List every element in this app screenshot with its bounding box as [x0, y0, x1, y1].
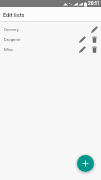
button[interactable]: Drogerie	[0, 34, 101, 44]
staticText: 20:11	[88, 1, 100, 7]
button[interactable]: Misc	[0, 44, 101, 54]
staticText: Edit lists	[3, 12, 25, 19]
button[interactable]: Edit Drogerie	[76, 34, 88, 44]
staticText: Drogerie	[4, 37, 76, 42]
button[interactable]: Delete Misc	[88, 44, 100, 54]
staticText: Misc	[4, 47, 76, 52]
staticText: Grocery	[4, 27, 76, 32]
button[interactable]: Edit Misc	[76, 44, 88, 54]
button[interactable]: Add list	[77, 155, 94, 172]
button[interactable]: Grocery	[0, 24, 101, 34]
button[interactable]: Delete Drogerie	[88, 34, 100, 44]
button[interactable]: Edit Grocery	[88, 24, 100, 34]
